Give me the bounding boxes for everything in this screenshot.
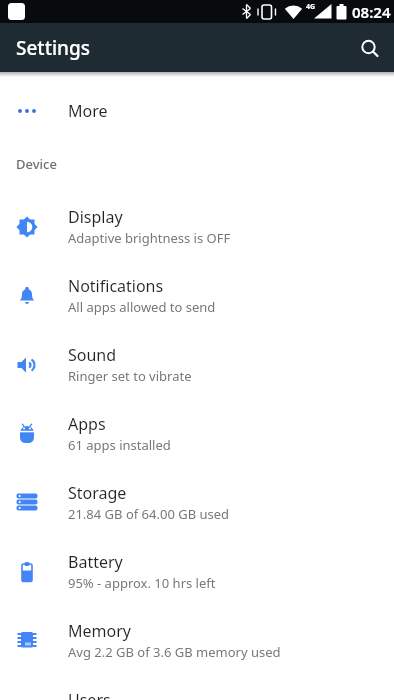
button[interactable]: Sound — [0, 330, 394, 399]
staticText: 95% - approx. 10 hrs left — [68, 574, 216, 592]
button[interactable]: Memory — [0, 606, 394, 675]
staticText: 61 apps installed — [68, 436, 171, 454]
staticText: Avg 2.2 GB of 3.6 GB memory used — [68, 643, 281, 661]
staticText: Ringer set to vibrate — [68, 367, 192, 385]
button[interactable]: Users — [0, 675, 394, 700]
staticText: More — [68, 100, 108, 122]
staticText: Sound — [68, 344, 117, 366]
button[interactable]: Notifications — [0, 261, 394, 330]
staticText: All apps allowed to send — [68, 298, 216, 316]
staticText: 08:24 — [352, 2, 391, 22]
staticText: Settings — [16, 35, 90, 61]
staticText: Adaptive brightness is OFF — [68, 229, 231, 247]
staticText: Users — [68, 689, 111, 700]
staticText: Device — [16, 155, 57, 173]
button[interactable]: Storage — [0, 468, 394, 537]
staticText: Storage — [68, 482, 127, 504]
staticText: 21.84 GB of 64.00 GB used — [68, 505, 230, 523]
button[interactable] — [346, 24, 394, 72]
button[interactable]: More — [0, 87, 394, 135]
button[interactable]: Apps — [0, 399, 394, 468]
staticText: Notifications — [68, 275, 164, 297]
staticText: Battery — [68, 551, 123, 573]
staticText: Display — [68, 206, 123, 228]
staticText: 4G — [306, 2, 316, 12]
button[interactable]: Display — [0, 192, 394, 261]
staticText: Apps — [68, 413, 106, 435]
staticText: Memory — [68, 620, 131, 642]
button[interactable]: Battery — [0, 537, 394, 606]
